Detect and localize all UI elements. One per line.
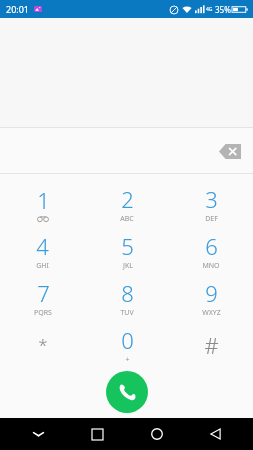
button[interactable]: #: [169, 321, 253, 368]
staticText: 20:01: [6, 3, 30, 15]
staticText: PQRS: [34, 308, 52, 318]
staticText: GHI: [36, 261, 49, 271]
button[interactable]: 5: [85, 227, 169, 274]
staticText: 8: [121, 278, 134, 308]
staticText: 2: [121, 184, 134, 214]
staticText: 9: [205, 278, 218, 308]
staticText: 7: [37, 278, 50, 308]
staticText: 1: [37, 185, 50, 215]
button[interactable]: Call: [106, 371, 148, 413]
staticText: 6: [205, 231, 218, 261]
staticText: 35%: [215, 4, 231, 15]
staticText: WXYZ: [202, 308, 221, 318]
button[interactable]: 9: [169, 274, 253, 321]
button[interactable]: 2: [85, 180, 169, 227]
staticText: 0: [121, 325, 134, 355]
button[interactable]: 0: [85, 321, 169, 368]
button[interactable]: Hide keypad: [8, 418, 68, 450]
button[interactable]: 4: [0, 227, 85, 274]
staticText: ABC: [120, 214, 134, 224]
button[interactable]: 6: [169, 227, 253, 274]
button[interactable]: *: [0, 321, 85, 368]
button[interactable]: Backspace: [213, 134, 247, 168]
staticText: +: [125, 355, 130, 365]
staticText: DEF: [205, 214, 218, 224]
staticText: *: [38, 333, 48, 356]
staticText: MNO: [202, 261, 220, 271]
staticText: #: [204, 330, 219, 360]
button[interactable]: Recents: [68, 418, 127, 450]
button[interactable]: 8: [85, 274, 169, 321]
button[interactable]: 1: [0, 180, 85, 227]
button[interactable]: Home: [127, 418, 186, 450]
staticText: 4G: [206, 6, 213, 13]
button[interactable]: 3: [169, 180, 253, 227]
staticText: 3: [205, 184, 218, 214]
staticText: 5: [121, 231, 134, 261]
button[interactable]: 7: [0, 274, 85, 321]
button[interactable]: Back: [186, 418, 245, 450]
staticText: 4: [36, 231, 49, 261]
staticText: JKL: [123, 261, 133, 271]
staticText: TUV: [120, 308, 134, 318]
